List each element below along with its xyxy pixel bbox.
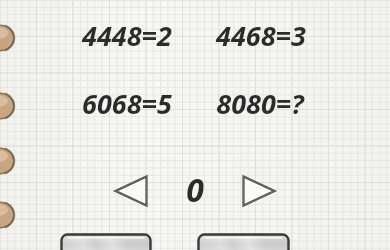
staticText: 6068=5 <box>68 85 186 121</box>
button[interactable]: Previous <box>112 172 150 210</box>
button[interactable]: Next <box>240 172 278 210</box>
staticText: 8080=? <box>200 85 320 121</box>
staticText: 4448=2 <box>68 17 186 53</box>
button[interactable] <box>197 233 290 250</box>
staticText: 4468=3 <box>202 17 320 53</box>
staticText: 0 <box>176 168 214 210</box>
button[interactable] <box>60 233 152 250</box>
